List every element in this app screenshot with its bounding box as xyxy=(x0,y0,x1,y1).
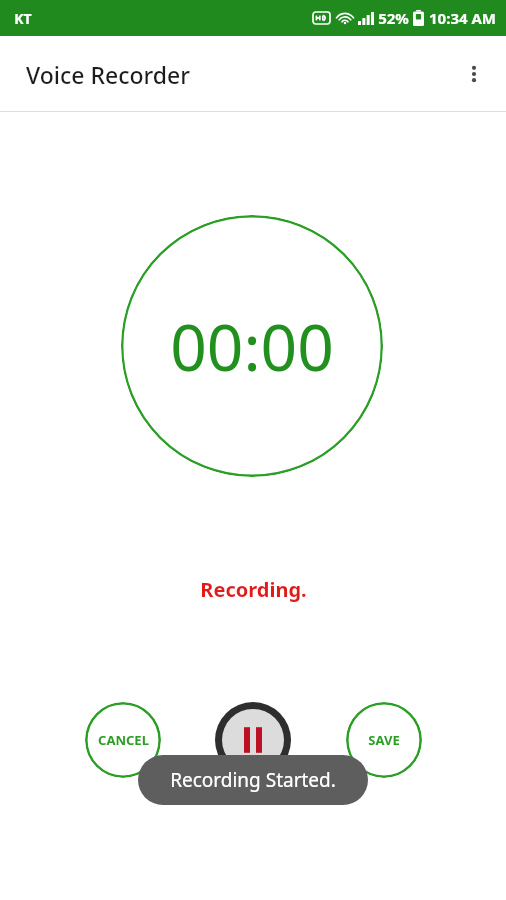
button[interactable]: More options xyxy=(450,50,498,98)
button[interactable]: 00:00 xyxy=(121,215,383,477)
staticText: SAVE xyxy=(368,731,400,749)
button[interactable]: CANCEL xyxy=(85,702,161,778)
staticText: 00:00 xyxy=(170,303,334,390)
staticText: Recording. xyxy=(200,576,307,603)
staticText: 10:34 AM xyxy=(429,8,496,28)
staticText: Recording Started. xyxy=(170,767,336,793)
staticText: Voice Recorder xyxy=(26,59,190,90)
button[interactable]: SAVE xyxy=(346,702,422,778)
staticText: 52% xyxy=(378,8,409,28)
button[interactable]: Pause recording xyxy=(213,700,293,780)
staticText: KT xyxy=(14,9,32,28)
staticText: CANCEL xyxy=(98,731,149,749)
